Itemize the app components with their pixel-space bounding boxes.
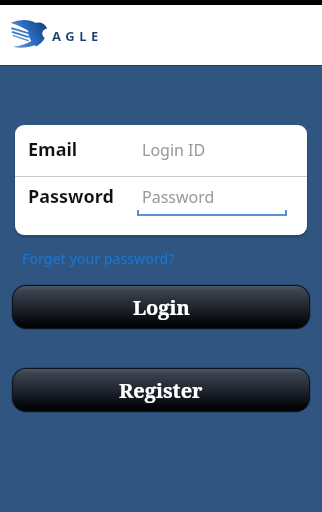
button[interactable]: Email — [15, 125, 307, 176]
staticText: AGLE — [52, 27, 103, 45]
button[interactable]: Password — [15, 177, 307, 235]
staticText: Password — [28, 184, 114, 209]
staticText: Login — [133, 294, 190, 321]
staticText: Email — [28, 137, 78, 162]
button[interactable]: Register — [12, 368, 310, 412]
staticText: Login ID — [142, 139, 206, 161]
button[interactable]: Forget your password? — [22, 249, 175, 268]
staticText: Password — [142, 186, 215, 208]
staticText: Register — [119, 377, 203, 404]
button[interactable]: Login — [12, 285, 310, 329]
